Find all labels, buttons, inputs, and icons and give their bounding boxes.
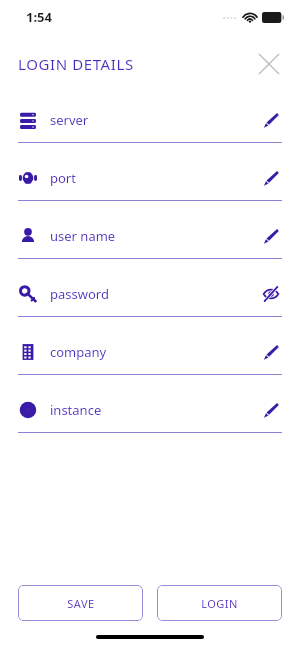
button[interactable]: LOGIN (157, 585, 282, 621)
button[interactable]: Edit port (260, 167, 282, 189)
button[interactable]: SAVE (18, 585, 143, 621)
staticText: user name (50, 227, 116, 245)
staticText: server (50, 111, 89, 129)
staticText: port (50, 169, 76, 187)
button[interactable]: Edit instance (260, 399, 282, 421)
staticText: 1:54 (26, 8, 52, 26)
button[interactable]: Edit user name (260, 225, 282, 247)
button[interactable]: Show password (260, 283, 282, 305)
staticText: company (50, 343, 107, 361)
button[interactable]: password (0, 272, 300, 330)
staticText: instance (50, 401, 102, 419)
staticText: LOGIN DETAILS (18, 54, 134, 74)
button[interactable]: Edit server (260, 109, 282, 131)
button[interactable]: Close (252, 47, 286, 81)
button[interactable]: instance (0, 388, 300, 446)
staticText: LOGIN (201, 596, 238, 611)
button[interactable]: server (0, 98, 300, 156)
button[interactable]: user name (0, 214, 300, 272)
button[interactable]: Edit company (260, 341, 282, 363)
button[interactable]: company (0, 330, 300, 388)
staticText: password (50, 285, 109, 303)
button[interactable]: port (0, 156, 300, 214)
staticText: SAVE (67, 596, 95, 611)
